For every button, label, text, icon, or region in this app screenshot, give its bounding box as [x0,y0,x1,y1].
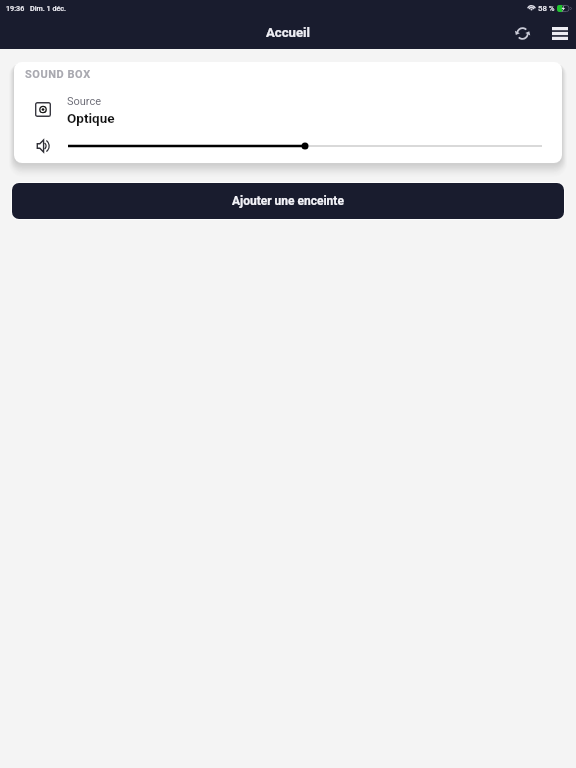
staticText: Source [67,95,102,108]
button[interactable]: Source [14,95,562,129]
button[interactable] [68,137,542,155]
staticText: Accueil [266,25,311,40]
button[interactable]: Ajouter une enceinte [12,183,564,219]
staticText: Optique [67,110,115,126]
button[interactable]: Menu [544,17,576,49]
button[interactable]: Rafraîchir [506,17,538,49]
staticText: Ajouter une enceinte [232,194,344,208]
staticText: Dim. 1 déc. [30,4,67,12]
staticText: SOUND BOX [25,68,91,81]
staticText: 58 % [538,4,555,13]
staticText: 19:36 [6,4,25,12]
